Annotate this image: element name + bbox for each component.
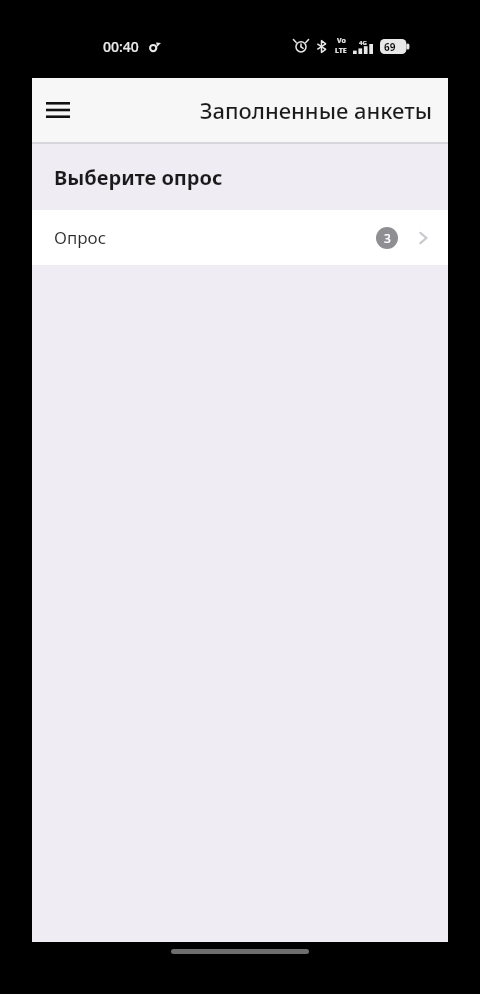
staticText: LTE [335,46,347,56]
button[interactable]: Open navigation menu [32,84,84,136]
button[interactable]: Опрос [32,210,448,265]
staticText: 69 [384,40,396,54]
staticText: 4G [359,39,367,47]
staticText: Заполненные анкеты [199,95,432,125]
staticText: 3 [384,230,391,246]
staticText: 00:40 [103,37,139,56]
staticText: Выберите опрос [54,164,223,191]
staticText: Vo [337,36,346,46]
staticText: Опрос [54,226,107,249]
